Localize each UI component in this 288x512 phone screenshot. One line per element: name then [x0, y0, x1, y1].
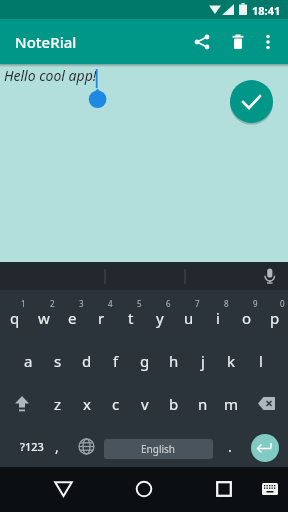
staticText: s	[54, 351, 62, 371]
staticText: u	[184, 308, 194, 328]
staticText: 1	[21, 298, 26, 309]
button[interactable]	[262, 268, 278, 284]
button[interactable]: j	[188, 339, 217, 382]
button[interactable]	[220, 19, 256, 64]
staticText: .	[228, 437, 232, 456]
staticText: d	[82, 351, 92, 371]
staticText: 5	[137, 298, 142, 309]
staticText: a	[24, 351, 33, 371]
button[interactable]	[256, 19, 280, 64]
button[interactable]: t	[116, 296, 145, 339]
button[interactable]: y	[145, 296, 174, 339]
button[interactable]: p	[261, 296, 288, 339]
button[interactable]	[255, 474, 285, 504]
button[interactable]: h	[159, 339, 188, 382]
staticText: r	[98, 308, 105, 328]
staticText: c	[112, 394, 120, 414]
staticText: ,	[55, 437, 59, 456]
button[interactable]: m	[217, 382, 246, 425]
staticText: 2	[50, 298, 55, 309]
staticText: NoteRial	[15, 32, 77, 52]
button[interactable]: v	[130, 382, 159, 425]
staticText: 0	[280, 298, 285, 309]
staticText: 7	[195, 298, 200, 309]
button[interactable]: x	[72, 382, 101, 425]
staticText: i	[216, 308, 220, 328]
staticText: 4	[108, 298, 113, 309]
staticText: 3	[79, 298, 84, 309]
staticText: 6	[166, 298, 171, 309]
staticText: 18:41	[252, 3, 281, 18]
staticText: e	[68, 308, 77, 328]
button[interactable]: q	[0, 296, 29, 339]
button[interactable]: ,	[46, 425, 68, 467]
staticText: f	[113, 351, 119, 371]
button[interactable]: u	[174, 296, 203, 339]
staticText: Hello cool app!	[4, 66, 97, 85]
button[interactable]	[75, 425, 97, 467]
button[interactable]	[0, 382, 43, 425]
staticText: z	[54, 394, 62, 414]
staticText: y	[156, 308, 164, 328]
button[interactable]: i	[203, 296, 232, 339]
staticText: g	[140, 351, 150, 371]
staticText: w	[38, 308, 50, 328]
button[interactable]: w	[29, 296, 58, 339]
staticText: 8	[224, 298, 229, 309]
staticText: v	[141, 394, 149, 414]
staticText: t	[128, 308, 134, 328]
button[interactable]: z	[43, 382, 72, 425]
staticText: 9	[253, 298, 258, 309]
staticText: b	[169, 394, 179, 414]
staticText: k	[227, 351, 236, 371]
button[interactable]	[228, 78, 275, 125]
staticText: o	[242, 308, 252, 328]
button[interactable]: f	[101, 339, 130, 382]
button[interactable]: l	[246, 339, 275, 382]
staticText: ?123	[20, 439, 44, 454]
button[interactable]: r	[87, 296, 116, 339]
button[interactable]	[251, 434, 279, 462]
staticText: x	[83, 394, 91, 414]
button[interactable]	[184, 19, 220, 64]
button[interactable]: o	[232, 296, 261, 339]
button[interactable]: e	[58, 296, 87, 339]
button[interactable]: g	[130, 339, 159, 382]
button[interactable]	[209, 474, 239, 504]
button[interactable]	[0, 262, 288, 290]
button[interactable]: .	[219, 425, 241, 467]
button[interactable]: b	[159, 382, 188, 425]
button[interactable]: d	[72, 339, 101, 382]
button[interactable]	[246, 382, 288, 425]
button[interactable]: n	[188, 382, 217, 425]
staticText: m	[224, 394, 239, 414]
button[interactable]: ?123	[10, 425, 54, 467]
button[interactable]: s	[43, 339, 72, 382]
button[interactable]: a	[14, 339, 43, 382]
staticText: n	[198, 394, 208, 414]
staticText: p	[270, 308, 280, 328]
button[interactable]	[48, 474, 78, 504]
staticText: h	[169, 351, 179, 371]
button[interactable]	[129, 474, 159, 504]
button[interactable]: c	[101, 382, 130, 425]
staticText: English	[141, 442, 176, 456]
staticText: q	[10, 308, 20, 328]
staticText: l	[259, 351, 263, 371]
staticText: j	[201, 351, 205, 371]
button[interactable]: k	[217, 339, 246, 382]
button[interactable]: English	[104, 439, 213, 459]
